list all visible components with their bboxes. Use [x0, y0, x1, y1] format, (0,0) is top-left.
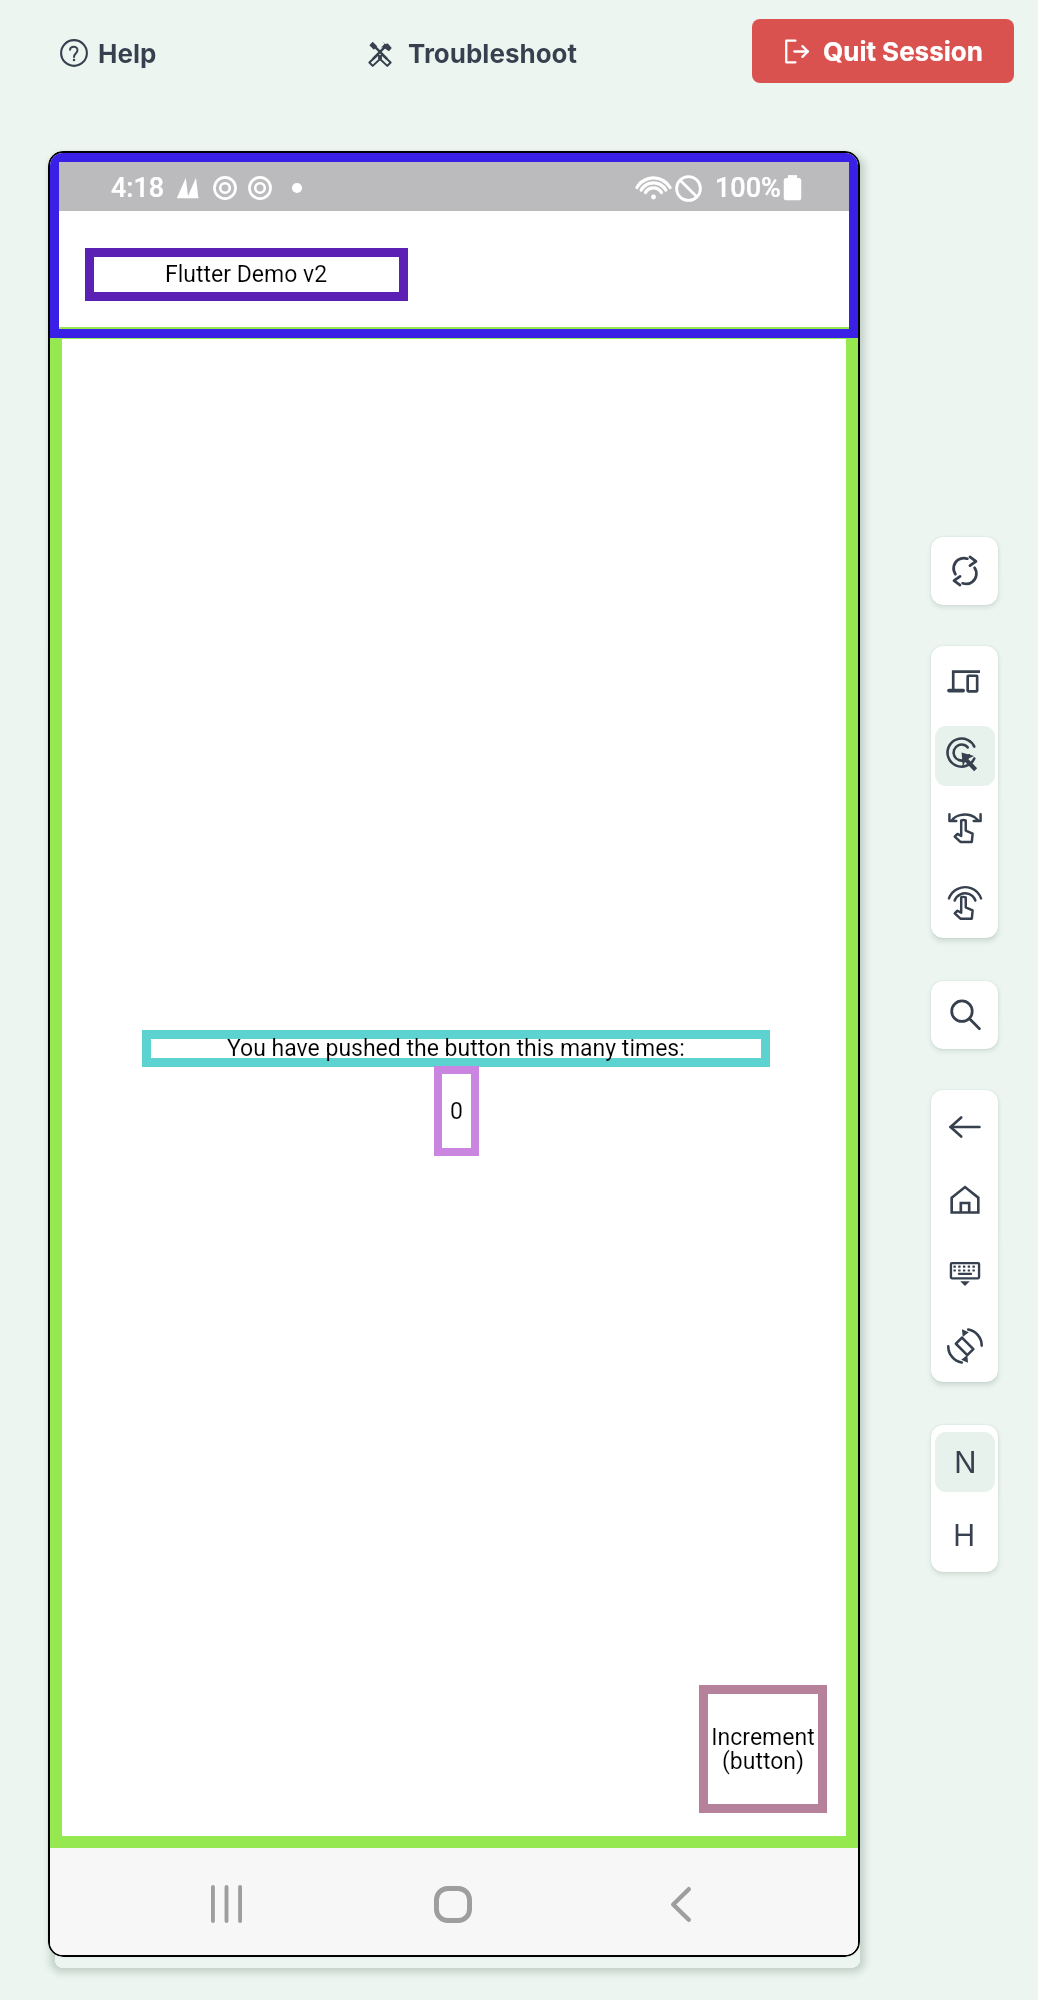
button[interactable]: Quit Session: [752, 19, 1014, 83]
staticText: Help: [98, 38, 157, 69]
staticText: N: [954, 1444, 977, 1480]
button[interactable]: Home: [931, 1163, 998, 1236]
button[interactable]: H: [931, 1498, 998, 1571]
staticText: H: [953, 1517, 976, 1553]
staticText: 0: [450, 1098, 463, 1125]
staticText: Quit Session: [823, 36, 983, 67]
button[interactable]: Flutter Demo v2: [85, 248, 408, 301]
staticText: You have pushed the button this many tim…: [227, 1035, 685, 1062]
staticText: Increment (button): [711, 1724, 815, 1775]
button[interactable]: Increment (button): [699, 1685, 827, 1813]
button[interactable]: N: [935, 1432, 995, 1492]
button[interactable]: Back: [931, 1090, 998, 1163]
button[interactable]: Screen mirroring: [931, 646, 998, 719]
staticText: Troubleshoot: [408, 38, 578, 69]
button[interactable]: Back: [653, 1876, 709, 1932]
button[interactable]: Swipe: [931, 792, 998, 865]
button[interactable]: Search: [931, 981, 998, 1049]
button[interactable]: Recents: [198, 1876, 254, 1932]
button[interactable]: Help: [60, 30, 157, 76]
button[interactable]: Rotate screen: [931, 1309, 998, 1382]
button[interactable]: Hide keyboard: [931, 1236, 998, 1309]
staticText: 4:18: [111, 172, 165, 204]
button[interactable]: Long press: [931, 865, 998, 938]
button[interactable]: Home: [425, 1876, 481, 1932]
staticText: Flutter Demo v2: [165, 261, 328, 288]
staticText: 100%: [715, 172, 781, 204]
button[interactable]: Tap: [935, 726, 995, 786]
button[interactable]: Rotate device: [931, 537, 998, 605]
button[interactable]: Troubleshoot: [366, 30, 578, 76]
